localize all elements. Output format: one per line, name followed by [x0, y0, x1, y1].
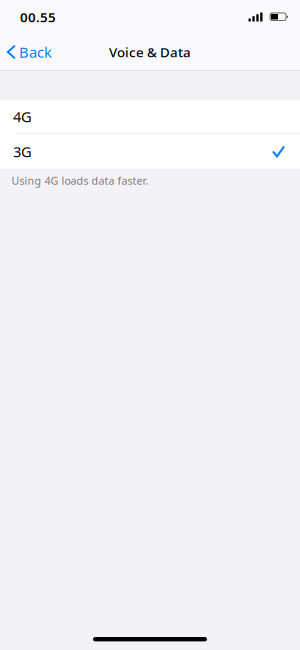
staticText: 3G	[13, 142, 32, 161]
staticText: Voice & Data	[109, 43, 191, 61]
staticText: 4G	[13, 107, 32, 126]
button[interactable]: 3G	[0, 134, 300, 169]
staticText: Back	[19, 42, 52, 62]
button[interactable]: 4G	[0, 100, 300, 133]
staticText: Using 4G loads data faster.	[12, 174, 149, 188]
staticText: 00.55	[20, 8, 56, 26]
button[interactable]: Back	[0, 35, 60, 69]
